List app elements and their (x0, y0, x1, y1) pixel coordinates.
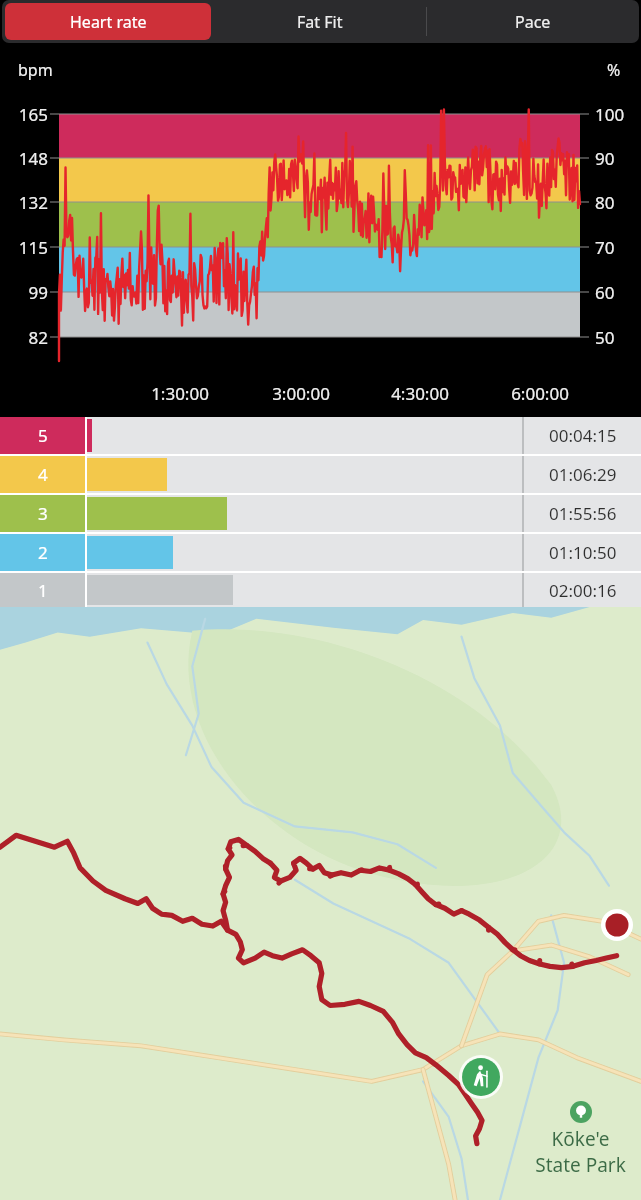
staticText: 3 (38, 502, 48, 525)
staticText: 115 (6, 236, 48, 259)
staticText: Heart rate (70, 11, 147, 33)
staticText: 01:10:50 (549, 541, 617, 564)
staticText: 3:00:00 (251, 382, 351, 405)
staticText: 1:30:00 (130, 382, 230, 405)
staticText: 70 (595, 236, 615, 259)
staticText: 1 (38, 579, 48, 602)
staticText: 90 (595, 147, 615, 170)
staticText: 82 (6, 326, 48, 349)
staticText: 60 (595, 281, 615, 304)
staticText: 00:04:15 (549, 424, 617, 447)
staticText: % (607, 59, 621, 81)
staticText: 2 (38, 541, 48, 564)
button[interactable]: 5 (0, 417, 641, 454)
button[interactable]: 3 (0, 495, 641, 532)
staticText: 148 (6, 147, 48, 170)
staticText: 165 (6, 103, 48, 126)
button[interactable]: 4 (0, 456, 641, 493)
staticText: 80 (595, 191, 615, 214)
button[interactable]: 2 (0, 534, 641, 571)
button[interactable]: 1 (0, 573, 641, 607)
staticText: bpm (18, 59, 53, 81)
staticText: State Park (520, 1152, 641, 1178)
staticText: 50 (595, 326, 615, 349)
staticText: Fat Fit (297, 11, 343, 33)
staticText: 99 (6, 281, 48, 304)
staticText: 01:06:29 (549, 463, 617, 486)
button[interactable]: Fat Fit (214, 0, 426, 43)
staticText: Kōke'e (520, 1126, 641, 1152)
button[interactable]: Pace (427, 0, 639, 43)
staticText: Pace (515, 11, 551, 33)
staticText: 01:55:56 (549, 502, 617, 525)
staticText: 4:30:00 (370, 382, 470, 405)
button[interactable]: Hiking activity marker (459, 1055, 503, 1099)
button[interactable]: Heart rate (5, 3, 211, 40)
staticText: 4 (38, 463, 48, 486)
button[interactable]: Track end point (601, 909, 633, 941)
staticText: 02:00:16 (549, 579, 617, 602)
staticText: 6:00:00 (490, 382, 590, 405)
staticText: 100 (595, 103, 625, 126)
staticText: 5 (38, 424, 48, 447)
staticText: 132 (6, 191, 48, 214)
